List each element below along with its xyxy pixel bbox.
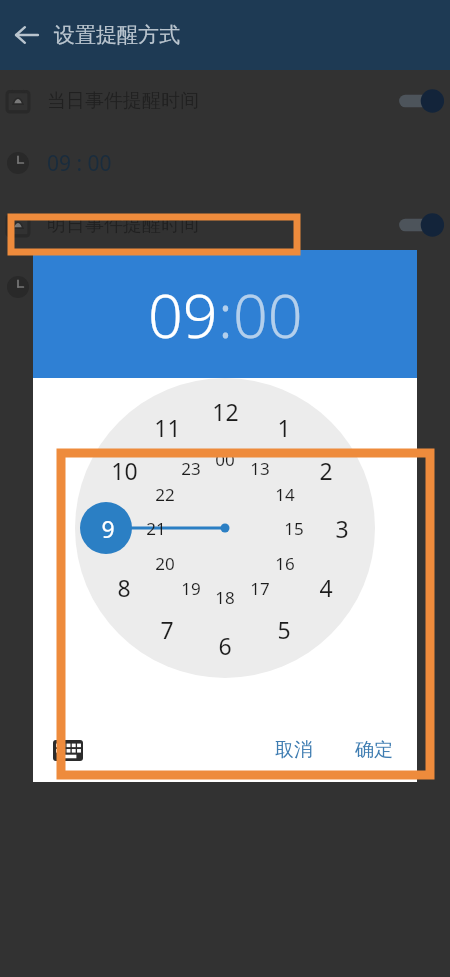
staticText: 13 xyxy=(250,457,270,480)
staticText: 17 xyxy=(250,577,270,600)
staticText: 4 xyxy=(319,572,333,602)
staticText: 3 xyxy=(335,513,349,543)
button[interactable]: 当日事件提醒时间 xyxy=(0,70,450,132)
staticText: 22 xyxy=(155,483,175,506)
staticText: 00 xyxy=(233,273,303,356)
button[interactable]: 明日事件提醒时间 xyxy=(0,194,450,256)
staticText: 09 : 00 xyxy=(47,149,112,178)
staticText: 确定 xyxy=(355,738,393,762)
staticText: 8 xyxy=(117,572,131,602)
staticText: 设置提醒方式 xyxy=(54,22,180,48)
button[interactable] xyxy=(0,256,450,318)
button[interactable]: 取消 xyxy=(261,730,327,770)
staticText: 14 xyxy=(275,483,295,506)
staticText: 23 xyxy=(181,457,201,480)
staticText: 00 xyxy=(215,448,235,471)
staticText: 19 xyxy=(181,577,201,600)
staticText: 11 xyxy=(154,412,181,442)
staticText: 15 xyxy=(284,517,304,540)
button[interactable]: 确定 xyxy=(341,730,407,770)
staticText: 6 xyxy=(218,630,232,660)
staticText: : xyxy=(218,273,233,356)
staticText: 09 xyxy=(148,273,218,356)
staticText: 12 xyxy=(212,396,239,426)
staticText: 2 xyxy=(319,455,333,485)
staticText: 当日事件提醒时间 xyxy=(47,89,199,113)
staticText: 7 xyxy=(160,614,174,644)
staticText: 取消 xyxy=(275,738,313,762)
staticText: 9 xyxy=(101,513,115,543)
staticText: 16 xyxy=(275,552,295,575)
button[interactable]: Switch to keyboard input xyxy=(51,733,85,767)
staticText: 明日事件提醒时间 xyxy=(47,213,199,237)
staticText: 10 xyxy=(111,455,138,485)
button[interactable]: Back xyxy=(0,8,54,62)
staticText: 1 xyxy=(277,412,291,442)
staticText: 18 xyxy=(215,586,235,609)
staticText: 5 xyxy=(277,614,291,644)
button[interactable]: 09 xyxy=(33,250,417,378)
staticText: 20 xyxy=(155,552,175,575)
staticText: 21 xyxy=(146,517,166,540)
